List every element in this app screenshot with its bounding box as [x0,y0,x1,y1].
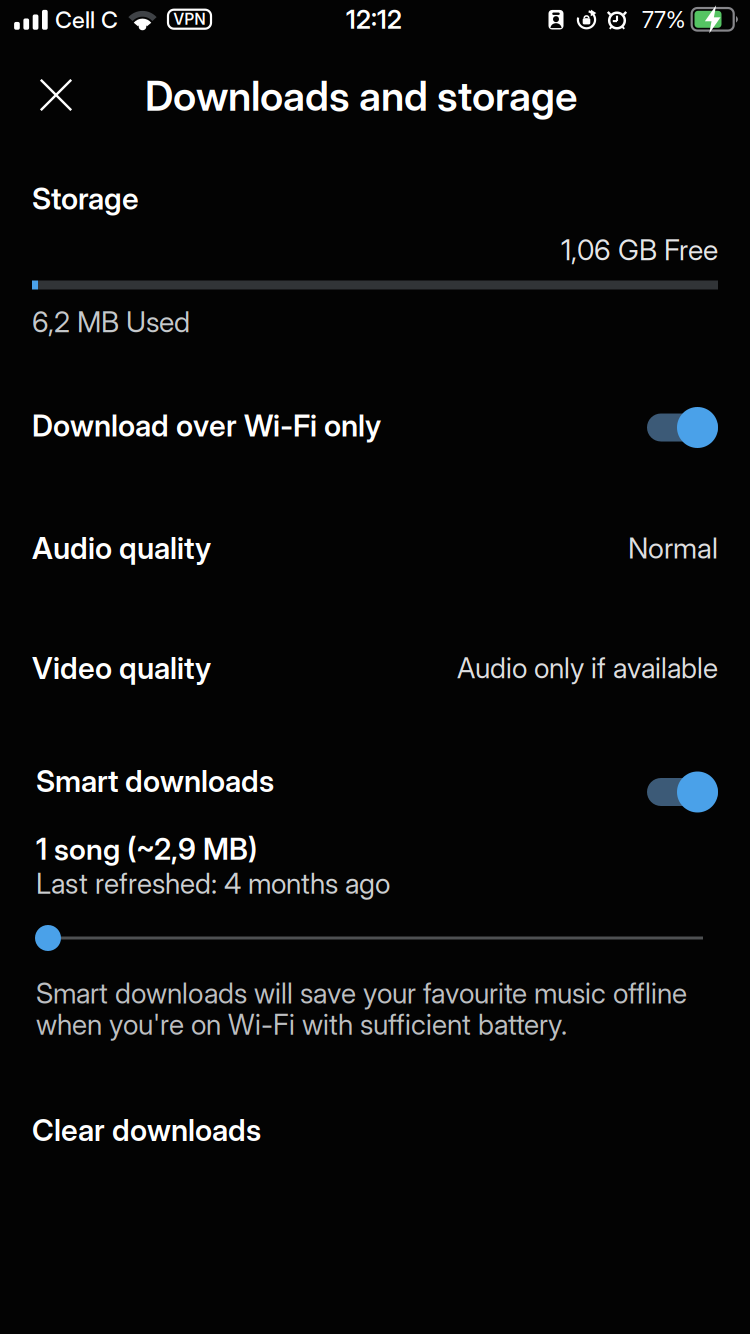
button[interactable] [647,407,718,448]
button[interactable] [0,923,750,953]
staticText: Clear downloads [32,1112,261,1148]
button[interactable] [20,59,92,131]
button[interactable]: Clear downloads [0,1100,750,1160]
staticText: Smart downloads will save your favourite… [36,978,687,1040]
button[interactable] [647,771,718,812]
staticText: Video quality [32,650,211,686]
button[interactable]: Audio quality [0,508,750,588]
staticText: 77% [642,6,685,34]
staticText: Last refreshed: 4 months ago [36,867,390,900]
staticText: Cell C [55,6,118,34]
staticText: Download over Wi-Fi only [32,407,381,444]
staticText: 12:12 [346,4,402,35]
staticText: Downloads and storage [145,71,577,121]
staticText: Normal [628,531,718,565]
staticText: 1,06 GB Free [561,233,718,267]
staticText: 6,2 MB Used [32,305,190,339]
staticText: Storage [32,180,139,217]
staticText: VPN [173,10,205,28]
button[interactable]: Video quality [0,628,750,708]
staticText: Audio only if available [457,651,718,685]
staticText: Audio quality [32,530,211,566]
staticText: 1 song (~2,9 MB) [36,831,257,867]
staticText: Smart downloads [36,763,274,799]
